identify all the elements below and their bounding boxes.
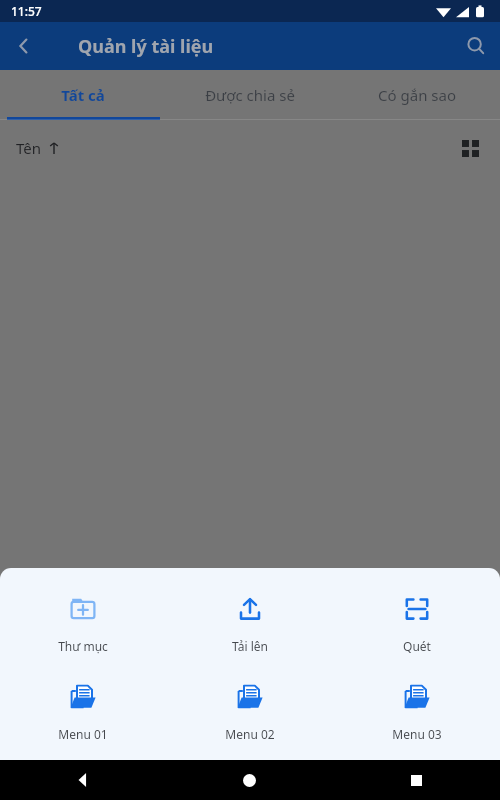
staticText: Thư mục — [58, 638, 108, 654]
staticText: Quét — [403, 638, 431, 654]
button[interactable]: Home — [166, 760, 333, 800]
button[interactable]: Có gắn sao — [333, 70, 500, 120]
button[interactable]: Được chia sẻ — [166, 70, 333, 120]
staticText: Tên — [16, 138, 42, 158]
button[interactable]: Tải lên — [166, 592, 333, 656]
button[interactable]: Menu 03 — [333, 680, 500, 744]
button[interactable]: Grid view — [450, 128, 490, 168]
staticText: Tải lên — [232, 638, 268, 654]
button[interactable]: Menu 01 — [0, 680, 166, 744]
button[interactable]: Tên — [16, 138, 60, 158]
button[interactable]: Back — [0, 22, 48, 70]
button[interactable]: Recents — [333, 760, 500, 800]
staticText: Menu 01 — [58, 726, 108, 742]
staticText: Quản lý tài liệu — [78, 34, 214, 59]
button[interactable]: Menu 02 — [166, 680, 333, 744]
button[interactable]: Back — [0, 760, 166, 800]
staticText: Tất cả — [61, 85, 105, 105]
button[interactable]: Thư mục — [0, 592, 166, 656]
staticText: Menu 02 — [225, 726, 275, 742]
staticText: Được chia sẻ — [205, 85, 295, 105]
staticText: Menu 03 — [392, 726, 442, 742]
button[interactable]: Quét — [333, 592, 500, 656]
staticText: 11:57 — [11, 3, 42, 19]
staticText: Có gắn sao — [378, 85, 456, 105]
button[interactable]: Search — [452, 22, 500, 70]
button[interactable]: Tất cả — [0, 70, 166, 120]
